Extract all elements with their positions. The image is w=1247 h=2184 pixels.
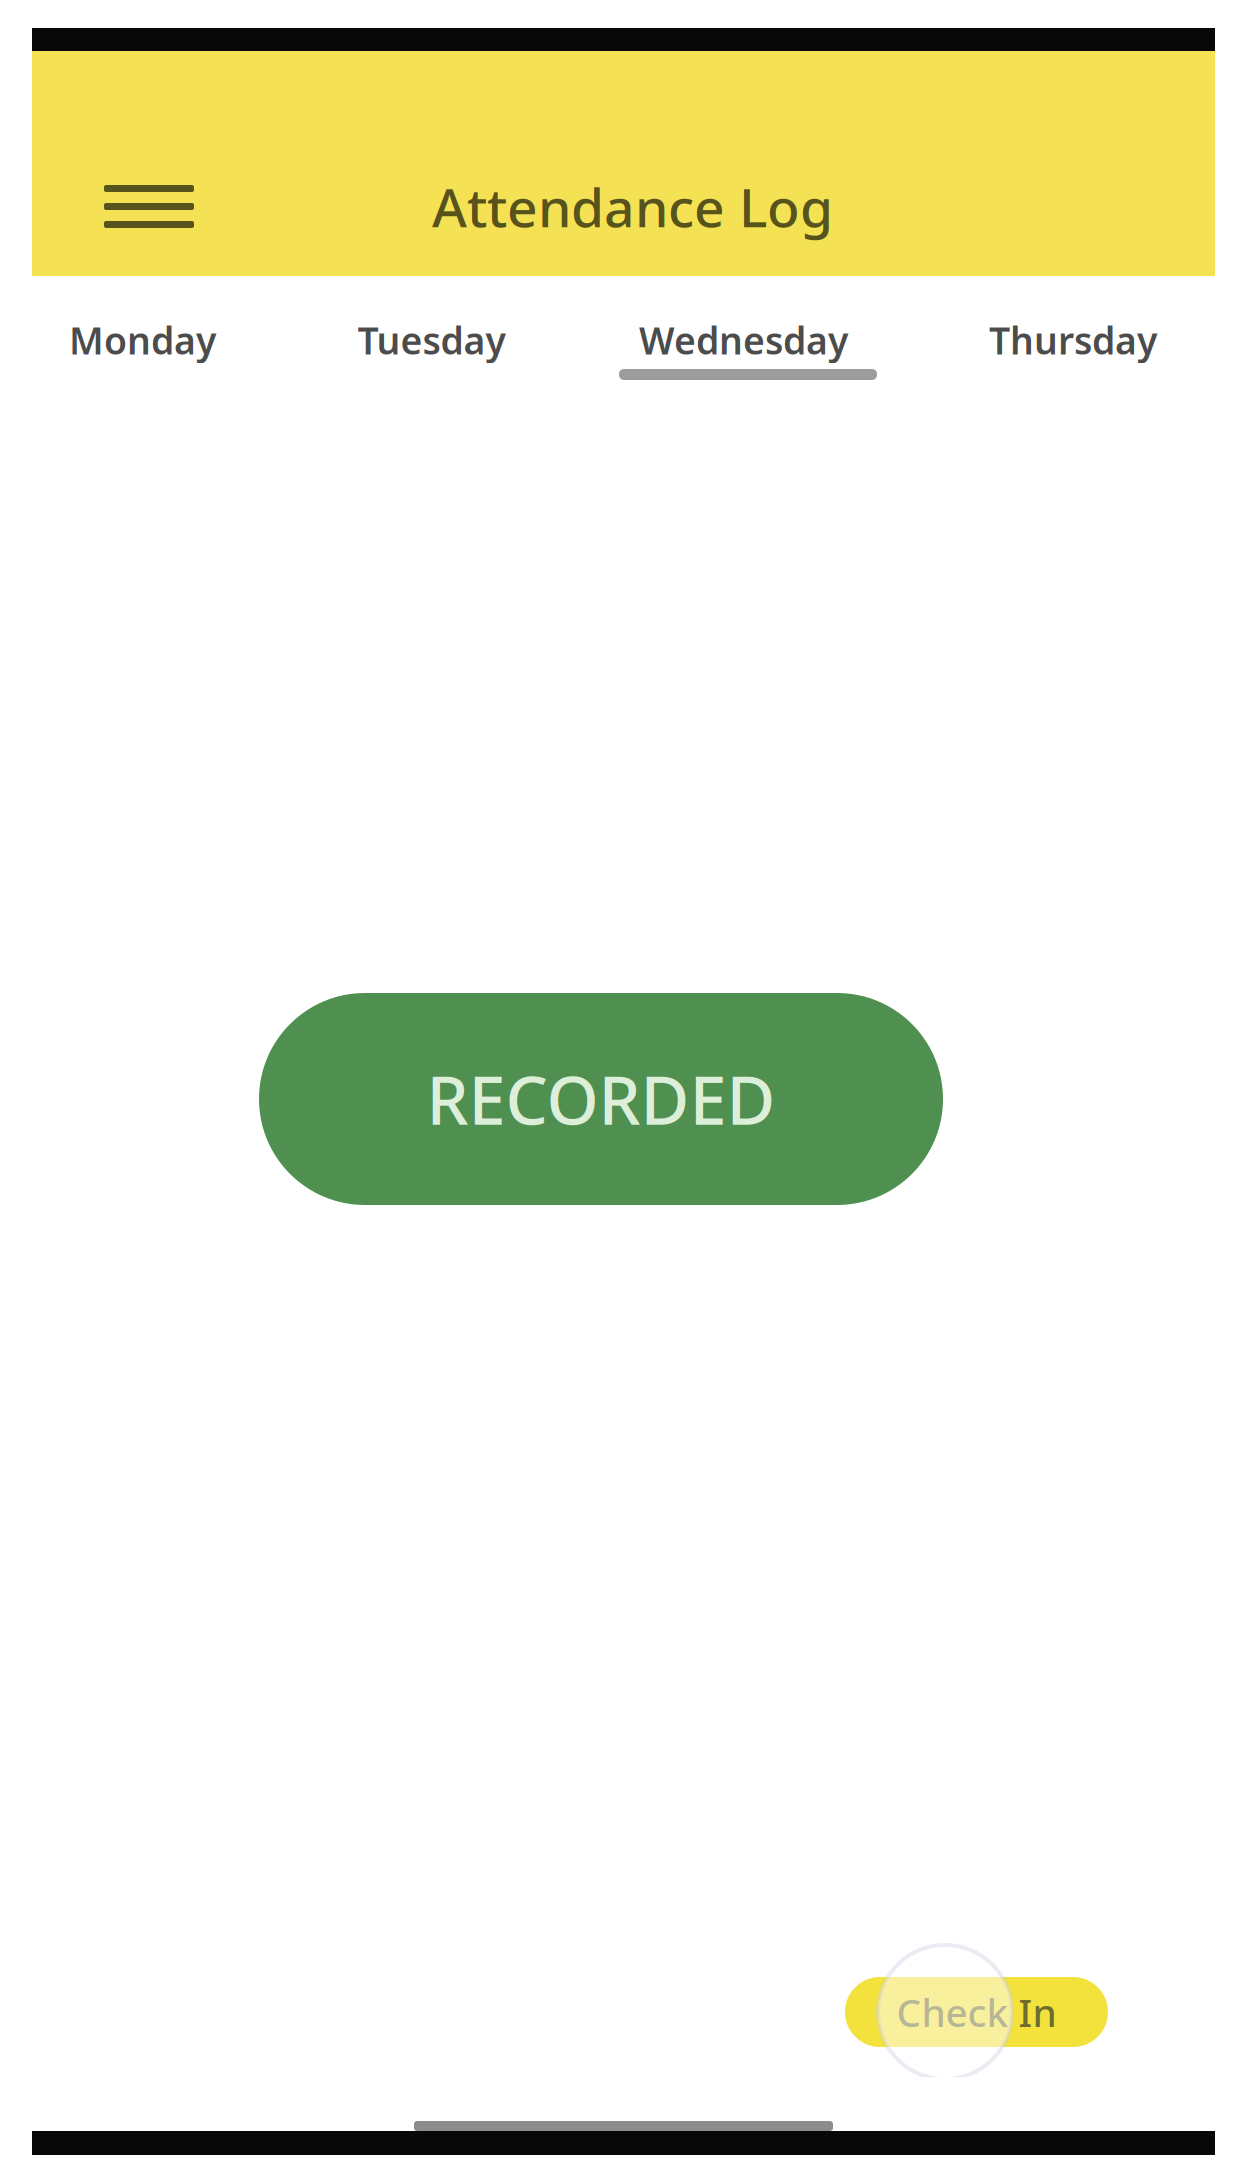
staticText: Wednesday [639, 315, 848, 365]
button[interactable]: Monday [50, 276, 235, 389]
button[interactable]: Wednesday [610, 276, 877, 389]
staticText: RECORDED [426, 1055, 775, 1143]
button[interactable]: Open menu [82, 94, 216, 319]
staticText: Thursday [989, 315, 1157, 365]
staticText: Attendance Log [432, 171, 833, 242]
button[interactable]: Tuesday [339, 276, 524, 389]
staticText: Check In [896, 1986, 1056, 2038]
staticText: Tuesday [357, 315, 505, 365]
button[interactable]: Thursday [973, 276, 1173, 389]
button[interactable]: RECORDED [259, 993, 943, 1205]
button[interactable]: Check In [845, 1947, 1108, 2077]
staticText: Monday [69, 315, 216, 365]
